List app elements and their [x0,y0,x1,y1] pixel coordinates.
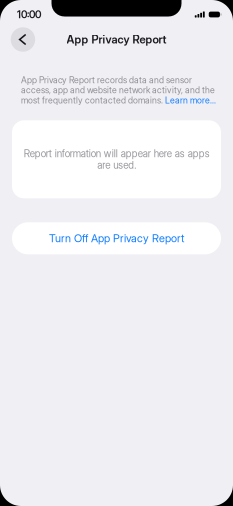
staticText: App Privacy Report [66,33,166,46]
staticText: Turn Off App Privacy Report [49,232,184,245]
button[interactable]: Back [11,27,35,52]
button[interactable]: Turn Off App Privacy Report [12,222,221,254]
staticText: 10:00 [17,8,41,21]
staticText: Report information will appear here as a… [23,148,209,171]
staticText: App Privacy Report records data and sens… [21,75,216,105]
